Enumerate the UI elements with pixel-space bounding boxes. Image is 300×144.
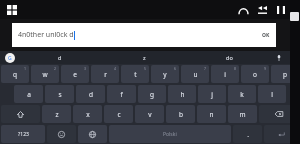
staticText: Polski [163, 131, 177, 138]
button[interactable]: d [18, 51, 102, 64]
staticText: h [180, 90, 185, 99]
staticText: 1 [24, 66, 27, 71]
staticText: j [211, 90, 213, 99]
button[interactable]: w [31, 65, 59, 83]
staticText: r [104, 70, 107, 79]
button[interactable]: s [45, 85, 74, 103]
button[interactable]: z [102, 51, 187, 64]
button[interactable]: do [187, 51, 272, 64]
button[interactable]: a [14, 85, 43, 103]
staticText: z [143, 54, 146, 61]
button[interactable]: Pause [275, 4, 287, 16]
staticText: 7 [204, 66, 207, 71]
staticText: o [253, 70, 257, 79]
staticText: q [13, 70, 17, 79]
staticText: l [271, 90, 273, 99]
staticText: a [27, 90, 31, 99]
button[interactable]: Emoji [47, 125, 76, 143]
staticText: . [247, 130, 249, 139]
staticText: m [239, 110, 246, 119]
staticText: i [224, 70, 226, 79]
button[interactable]: i [211, 65, 239, 83]
staticText: z [55, 110, 59, 119]
staticText: 9 [264, 66, 267, 71]
staticText: G [8, 55, 12, 62]
staticText: w [42, 70, 48, 79]
button[interactable]: t [121, 65, 149, 83]
button[interactable]: k [228, 85, 256, 103]
staticText: s [58, 90, 62, 99]
staticText: 4 [114, 66, 117, 71]
staticText: y [163, 70, 167, 79]
button[interactable]: u [181, 65, 209, 83]
button[interactable]: g [138, 85, 166, 103]
button[interactable]: c [104, 105, 133, 123]
button[interactable]: Enter [264, 125, 299, 143]
staticText: 5 [144, 66, 147, 71]
button[interactable]: e [61, 65, 89, 83]
button[interactable]: . [233, 125, 262, 143]
button[interactable]: Screenshot [290, 12, 299, 21]
button[interactable]: x [73, 105, 102, 123]
staticText: d [89, 90, 93, 99]
staticText: n [209, 110, 214, 119]
button[interactable]: d [76, 85, 105, 103]
button[interactable]: Back [237, 4, 249, 16]
button[interactable]: Apps [4, 2, 20, 18]
button[interactable]: l [258, 85, 286, 103]
staticText: k [240, 90, 244, 99]
button[interactable]: y [151, 65, 179, 83]
staticText: 4n0ther unl0ck d [18, 30, 74, 40]
button[interactable]: j [198, 85, 226, 103]
staticText: ?123 [18, 131, 29, 138]
button[interactable]: Volume down [256, 4, 268, 16]
staticText: u [193, 70, 198, 79]
staticText: 3 [84, 66, 87, 71]
staticText: b [179, 110, 183, 119]
button[interactable]: f [107, 85, 136, 103]
staticText: e [73, 70, 77, 79]
button[interactable]: ?123 [1, 125, 45, 143]
staticText: c [117, 110, 121, 119]
staticText: 8 [234, 66, 237, 71]
button[interactable]: Shift [1, 105, 40, 123]
button[interactable]: z [42, 105, 71, 123]
button[interactable]: 4n0ther unl0ck d [12, 23, 276, 47]
button[interactable]: h [168, 85, 196, 103]
staticText: OK [262, 32, 270, 39]
staticText: x [86, 110, 90, 119]
button[interactable]: Voice input [272, 51, 286, 64]
staticText: t [134, 70, 137, 79]
button[interactable]: Polski [109, 125, 231, 143]
button[interactable]: m [228, 105, 257, 123]
staticText: 2 [54, 66, 57, 71]
button[interactable]: o [241, 65, 269, 83]
button[interactable]: Voice [5, 53, 15, 63]
staticText: do [226, 54, 233, 61]
staticText: g [150, 90, 154, 99]
staticText: f [120, 90, 123, 99]
staticText: p [283, 70, 287, 79]
button[interactable]: Backspace [259, 105, 299, 123]
button[interactable]: Change language [78, 125, 107, 143]
staticText: v [148, 110, 152, 119]
staticText: d [58, 54, 62, 61]
button[interactable]: p [271, 65, 299, 83]
staticText: 6 [174, 66, 177, 71]
button[interactable]: b [166, 105, 195, 123]
button[interactable]: v [135, 105, 164, 123]
button[interactable]: n [197, 105, 226, 123]
button[interactable]: r [91, 65, 119, 83]
button[interactable]: q [1, 65, 29, 83]
